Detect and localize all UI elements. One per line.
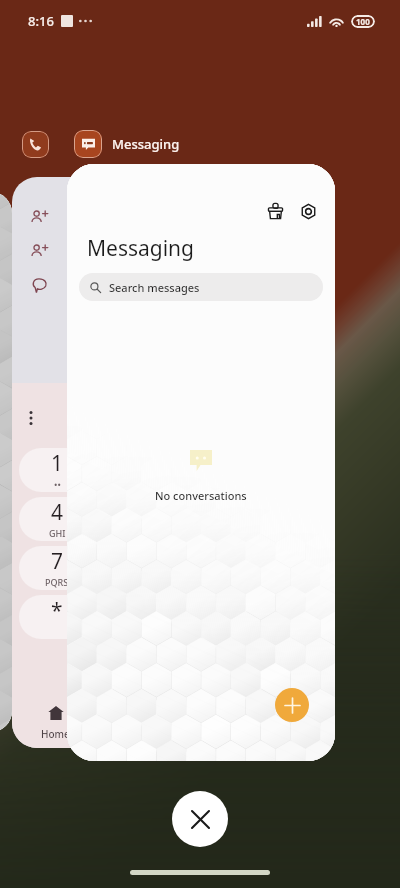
button[interactable]: *	[19, 595, 97, 639]
staticText: No conversations	[155, 488, 247, 503]
staticText: Search messages	[109, 280, 200, 295]
staticText: Messaging	[87, 234, 195, 263]
staticText: 7	[51, 547, 64, 576]
button[interactable]: 4	[19, 497, 97, 541]
button[interactable]: New conversation	[275, 688, 309, 722]
button[interactable]: Settings	[295, 198, 321, 224]
staticText: 1	[51, 449, 64, 478]
staticText: ••	[54, 478, 61, 490]
button[interactable]: 1	[19, 448, 97, 492]
staticText: 4	[51, 498, 64, 527]
button[interactable]: Phone	[22, 131, 49, 158]
staticText: 100	[356, 16, 370, 27]
staticText: Home	[41, 727, 70, 741]
button[interactable]: 1	[12, 177, 98, 748]
button[interactable]: Close all	[172, 791, 228, 847]
staticText: 8:16	[28, 12, 54, 30]
button[interactable]: 7	[19, 546, 97, 590]
button[interactable]: Clean up	[262, 198, 288, 224]
staticText: PQRS	[45, 576, 69, 588]
staticText: Messaging	[112, 135, 180, 153]
button[interactable]: Messaging app icon	[74, 130, 102, 158]
staticText: GHI	[49, 527, 66, 539]
staticText: *	[51, 596, 63, 625]
button[interactable]: Search messages	[79, 273, 323, 301]
